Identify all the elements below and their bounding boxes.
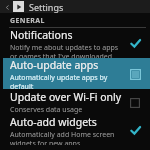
- other: Back: [2, 2, 12, 12]
- staticText: Notifications: [10, 28, 73, 42]
- button[interactable]: Auto-add widgets: [126, 121, 144, 139]
- button[interactable]: Notifications: [0, 28, 150, 58]
- button[interactable]: Auto-update apps: [126, 65, 144, 83]
- button[interactable]: Auto-update apps: [3, 58, 150, 89]
- staticText: Auto-add widgets: [10, 115, 97, 129]
- staticText: Update over Wi-Fi only: [10, 90, 122, 104]
- staticText: Notify me about updates to apps or games…: [10, 43, 122, 58]
- staticText: Automatically add Home screen widgets fo…: [10, 130, 122, 145]
- staticText: Auto-update apps: [10, 58, 99, 72]
- staticText: Conserves data usage: [10, 105, 83, 115]
- button[interactable]: Update over Wi-Fi only: [126, 94, 144, 112]
- button[interactable]: Back: [0, 0, 150, 13]
- staticText: Automatically update apps by default: [10, 73, 122, 89]
- button[interactable]: Auto-add widgets: [0, 115, 150, 145]
- staticText: Settings: [29, 1, 64, 13]
- staticText: GENERAL: [10, 16, 45, 26]
- button[interactable]: Notifications: [126, 34, 144, 52]
- button[interactable]: Update over Wi-Fi only: [0, 89, 150, 115]
